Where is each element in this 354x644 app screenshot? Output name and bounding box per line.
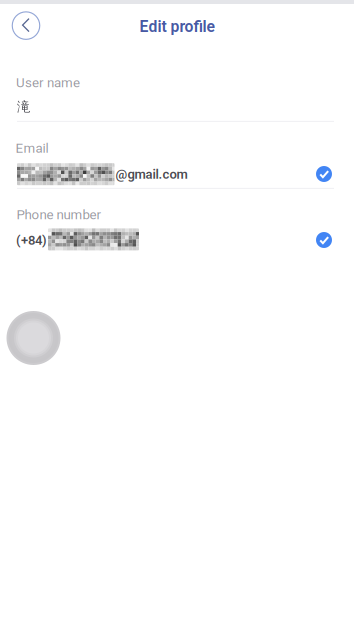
staticText: @gmail.com — [115, 166, 187, 182]
staticText: User name — [16, 75, 80, 90]
staticText: Email — [15, 140, 48, 156]
staticText: Edit profile — [139, 17, 214, 36]
staticText: Phone number — [16, 207, 101, 223]
staticText: 滝 — [17, 98, 30, 115]
staticText: (+84) — [16, 233, 47, 248]
button[interactable]: Back — [9, 9, 43, 43]
